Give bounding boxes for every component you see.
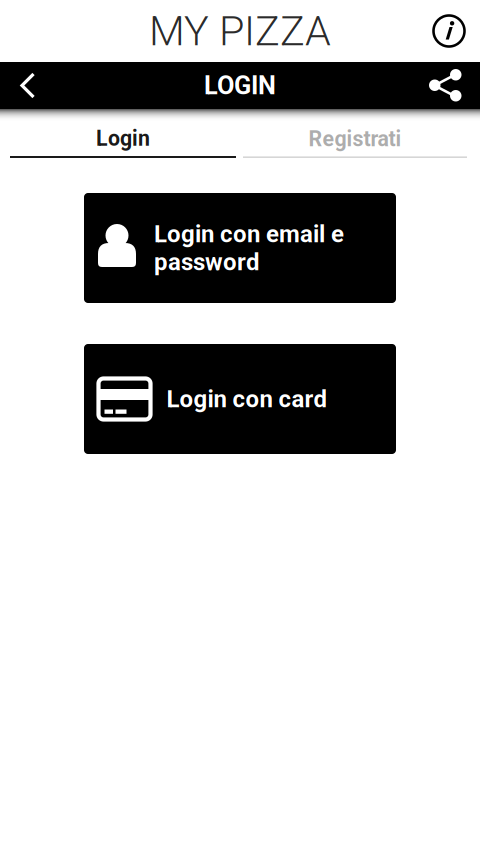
- button[interactable]: Back: [0, 62, 56, 109]
- button[interactable]: Info: [418, 0, 480, 62]
- staticText: LOGIN: [204, 71, 276, 100]
- staticText: Login: [96, 126, 150, 151]
- button[interactable]: Login: [10, 109, 236, 158]
- button[interactable]: Login con card: [84, 344, 396, 454]
- button[interactable]: Share: [411, 62, 480, 109]
- staticText: MY PIZZA: [149, 7, 331, 55]
- staticText: Login con email e password: [154, 220, 344, 276]
- button[interactable]: Registrati: [243, 109, 467, 158]
- staticText: Registrati: [308, 126, 401, 151]
- button[interactable]: Login con email e password: [84, 193, 396, 303]
- staticText: Login con card: [166, 385, 327, 413]
